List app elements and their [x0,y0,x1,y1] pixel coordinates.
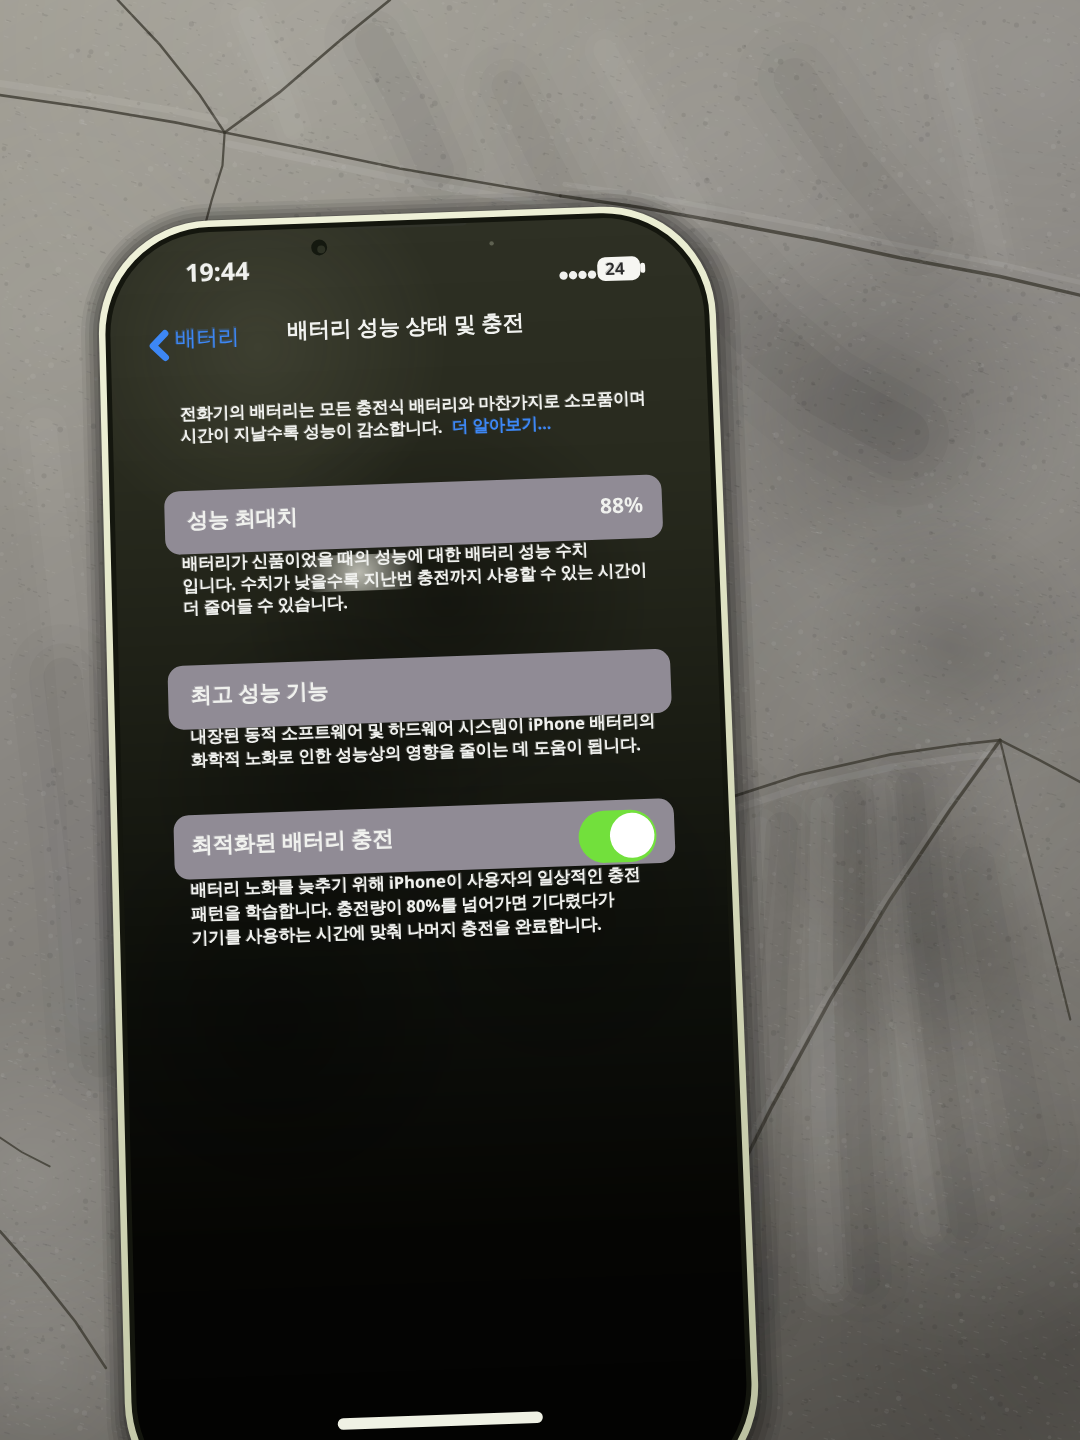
button[interactable]: 배터리 뒤로 가기 [143,318,283,376]
button[interactable]: 성능 최대치 88% [160,474,668,544]
button[interactable]: 최고 성능 기능 [162,648,676,718]
button[interactable]: 더 알아보기 [433,418,551,450]
button[interactable]: 최적화된 배터리 충전 켜짐 전환 [572,806,664,868]
button[interactable]: 최적화된 배터리 충전 [165,800,680,872]
